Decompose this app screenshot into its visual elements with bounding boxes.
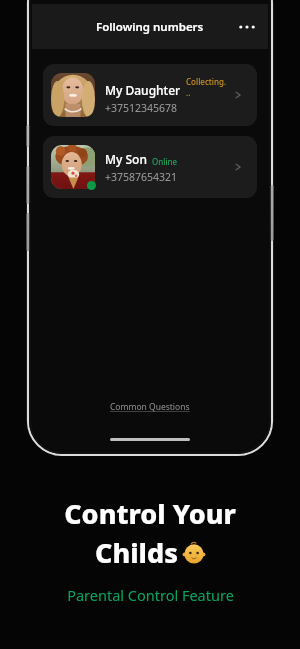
button[interactable]: Open My Daughter details xyxy=(227,84,249,106)
button[interactable]: Common Questions xyxy=(104,398,196,416)
staticText: Childs xyxy=(95,534,178,571)
button[interactable]: Open My Son details xyxy=(227,156,249,178)
button[interactable]: My Son xyxy=(43,136,257,198)
staticText: Parental Control Feature xyxy=(67,585,234,605)
staticText: +37512345678 xyxy=(105,101,178,115)
staticText: My Son xyxy=(105,151,147,167)
staticText: Online xyxy=(152,156,178,167)
staticText: Common Questions xyxy=(110,401,190,413)
staticText: Following numbers xyxy=(96,19,204,35)
staticText: Control Your xyxy=(64,495,236,532)
staticText: Collecting... xyxy=(186,76,227,98)
button[interactable]: My Daughter xyxy=(43,64,257,126)
staticText: My Daughter xyxy=(105,82,181,98)
staticText: +37587654321 xyxy=(105,170,178,184)
button[interactable]: More options xyxy=(232,12,262,42)
